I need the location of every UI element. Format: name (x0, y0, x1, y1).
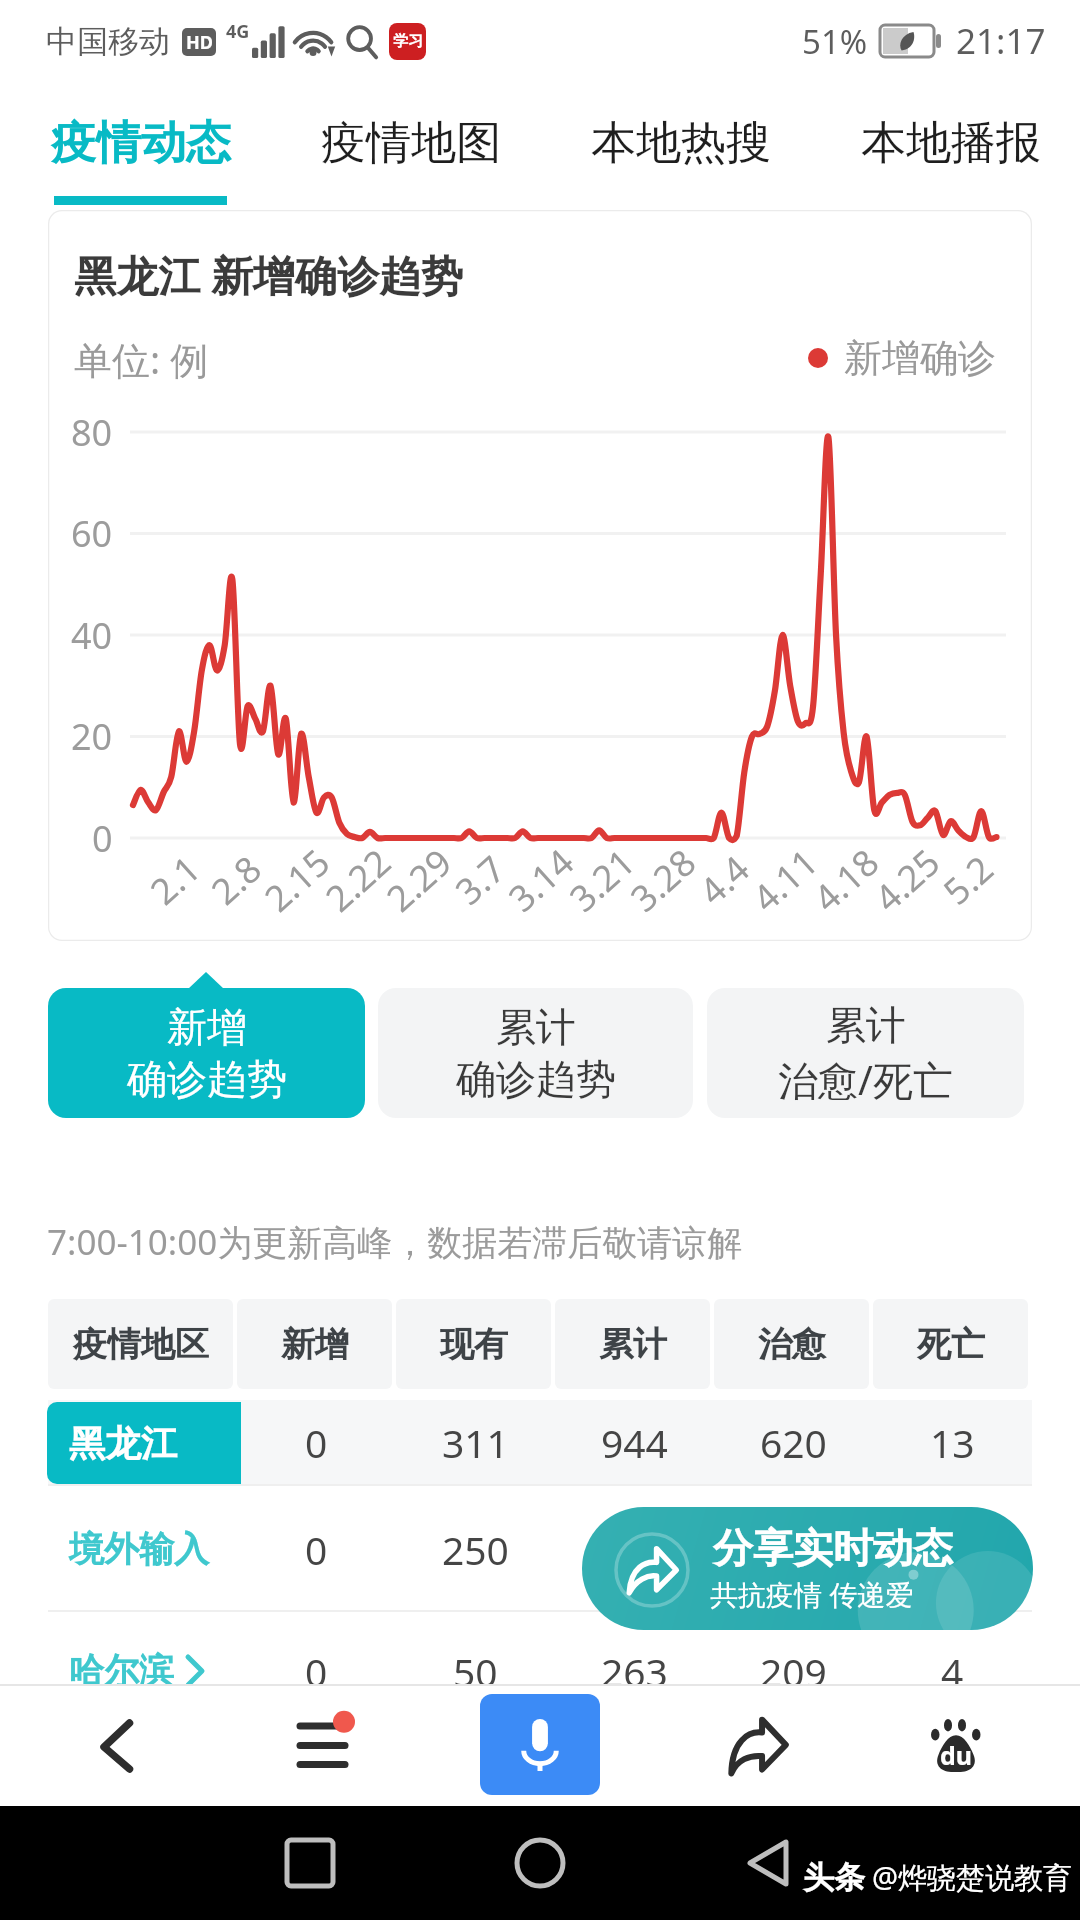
staticText: 学习 (393, 32, 423, 51)
button[interactable]: 新增 (237, 1299, 392, 1389)
button[interactable]: 疫情地图 (276, 89, 546, 197)
button[interactable]: 疫情地区 (48, 1299, 233, 1389)
staticText: 黑龙江 新增确诊趋势 (74, 246, 463, 303)
staticText: 黑龙江 (69, 1421, 177, 1466)
staticText: 0 (305, 1523, 328, 1576)
staticText: 50 (453, 1645, 498, 1698)
staticText: 本地热搜 (591, 115, 771, 172)
staticText: 新增 (167, 1002, 247, 1052)
staticText: 累计 (826, 1000, 906, 1050)
staticText: 累计 (496, 1002, 576, 1052)
staticText: 21:17 (956, 17, 1046, 65)
button[interactable]: Baidu (896, 1685, 1016, 1807)
staticText: 4G (226, 19, 250, 44)
button[interactable]: Menu (263, 1685, 383, 1807)
staticText: 新增确诊 (844, 334, 996, 382)
button[interactable]: 累计 (378, 988, 693, 1118)
button[interactable]: 分享实时动态 (582, 1507, 1033, 1630)
button[interactable]: 本地播报 (816, 89, 1080, 197)
staticText: 死亡 (917, 1323, 985, 1366)
staticText: 4 (941, 1645, 964, 1698)
staticText: 0 (305, 1416, 328, 1469)
staticText: 944 (601, 1416, 668, 1469)
staticText: 13 (930, 1416, 975, 1469)
staticText: 治愈/死亡 (778, 1052, 953, 1107)
staticText: 本地播报 (861, 115, 1041, 172)
staticText: 现有 (440, 1323, 508, 1366)
staticText: HD (186, 30, 213, 55)
staticText: 263 (601, 1645, 668, 1698)
staticText: 治愈 (758, 1323, 826, 1366)
button[interactable] (48, 1400, 1032, 1484)
staticText: 疫情动态 (51, 115, 231, 172)
staticText: 新增 (281, 1323, 349, 1366)
button[interactable]: Back (728, 1806, 810, 1920)
button[interactable]: 死亡 (873, 1299, 1028, 1389)
button[interactable] (48, 1612, 1032, 1730)
staticText: 头条 (803, 1858, 865, 1897)
button[interactable]: 本地热搜 (546, 89, 816, 197)
button[interactable]: 治愈 (714, 1299, 869, 1389)
staticText: 累计 (599, 1323, 667, 1366)
staticText: 境外输入 (69, 1527, 209, 1571)
button[interactable]: Home (480, 1806, 600, 1920)
button[interactable]: Back (56, 1685, 176, 1807)
button[interactable] (48, 1486, 1032, 1612)
staticText: 311 (442, 1416, 509, 1469)
staticText: du (940, 1738, 973, 1772)
staticText: @烨骁楚说教育 (872, 1857, 1073, 1897)
staticText: 中国移动 (46, 22, 170, 61)
staticText: 确诊趋势 (456, 1054, 616, 1104)
staticText: 共抗疫情 传递爱 (710, 1575, 914, 1613)
button[interactable]: 累计 (707, 988, 1024, 1118)
staticText: 209 (760, 1645, 827, 1698)
staticText: 疫情地图 (321, 115, 501, 172)
button[interactable]: 现有 (396, 1299, 551, 1389)
button[interactable]: 疫情动态 (6, 89, 276, 197)
button[interactable]: Share (698, 1685, 818, 1807)
staticText: 哈尔滨 (69, 1649, 174, 1693)
button[interactable]: Voice search (480, 1694, 600, 1795)
staticText: 单位: 例 (74, 333, 209, 385)
staticText: 620 (760, 1416, 827, 1469)
staticText: 确诊趋势 (127, 1054, 287, 1104)
staticText: 0 (305, 1645, 328, 1698)
staticText: 分享实时动态 (713, 1523, 953, 1573)
staticText: 7:00-10:00为更新高峰，数据若滞后敬请谅解 (47, 1218, 743, 1266)
button[interactable]: 累计 (555, 1299, 710, 1389)
staticText: 疫情地区 (73, 1323, 209, 1366)
staticText: 51% (802, 19, 868, 64)
staticText: 250 (442, 1523, 509, 1576)
button[interactable]: 新增 (48, 988, 365, 1118)
button[interactable]: Recents (250, 1806, 370, 1920)
